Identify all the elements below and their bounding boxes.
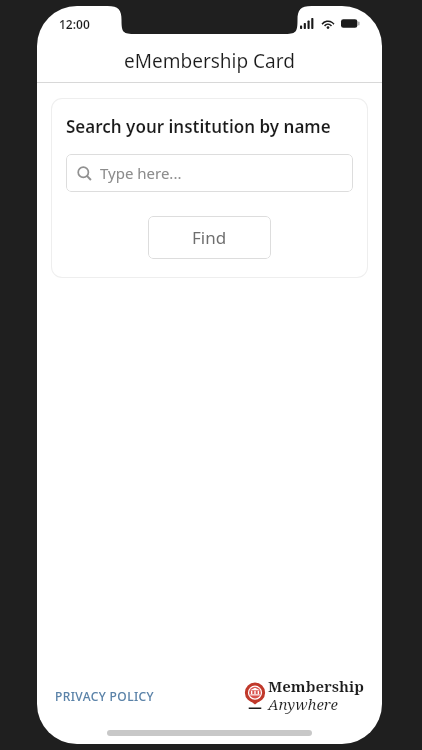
- staticText: Search your institution by name: [66, 115, 331, 138]
- button[interactable]: Type here...: [66, 154, 353, 192]
- staticText: Find: [192, 226, 227, 249]
- other: Membership Anywhere logo: [244, 676, 364, 716]
- button[interactable]: Find: [148, 216, 271, 259]
- staticText: Membership: [268, 676, 364, 696]
- staticText: Anywhere: [268, 694, 338, 714]
- staticText: 12:00: [59, 16, 90, 32]
- staticText: eMembership Card: [124, 48, 295, 74]
- staticText: Type here...: [100, 163, 182, 183]
- staticText: PRIVACY POLICY: [55, 688, 155, 704]
- button[interactable]: PRIVACY POLICY: [55, 682, 155, 710]
